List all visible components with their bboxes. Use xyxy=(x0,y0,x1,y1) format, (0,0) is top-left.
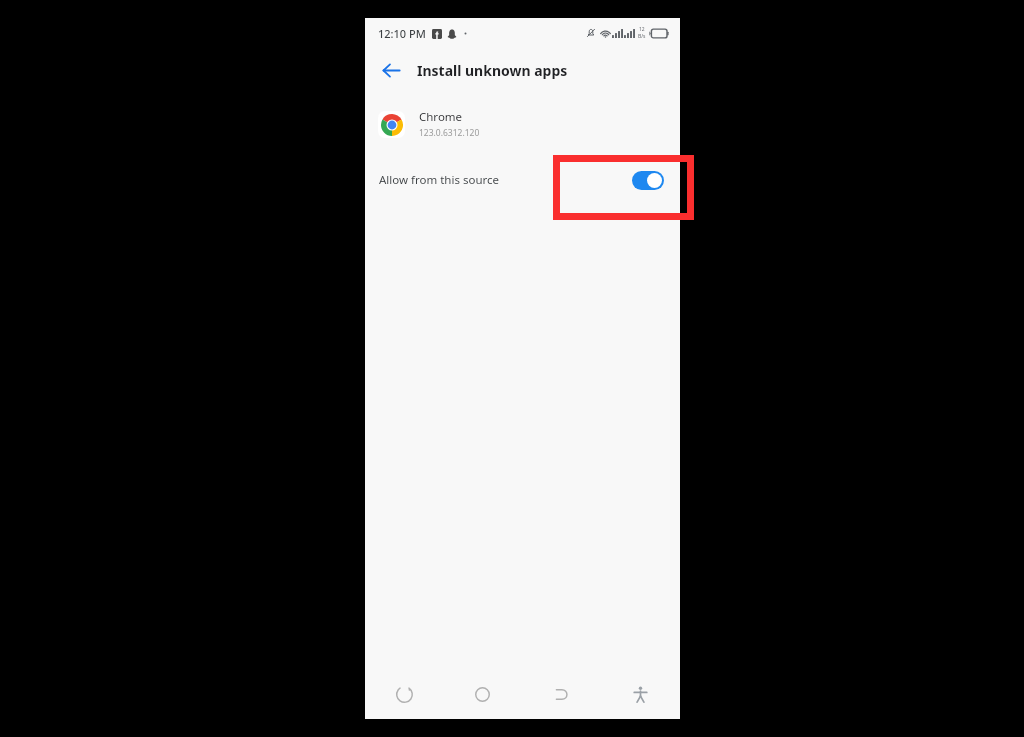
staticText: 12:10 PM xyxy=(378,26,426,41)
staticText: B/s xyxy=(638,33,646,40)
button[interactable]: Allow from this source xyxy=(365,158,680,202)
button[interactable]: Allow from this source toggle, on xyxy=(632,171,664,190)
staticText: 12 xyxy=(639,26,645,33)
button[interactable]: Chrome xyxy=(365,104,680,144)
staticText: 123.0.6312.120 xyxy=(419,127,480,139)
button[interactable]: Accessibility xyxy=(601,669,680,719)
staticText: Allow from this source xyxy=(379,172,500,188)
button[interactable]: Back xyxy=(376,55,406,85)
button[interactable]: Recents xyxy=(365,669,443,719)
staticText: Chrome xyxy=(419,109,463,125)
button[interactable]: Back xyxy=(522,669,601,719)
button[interactable]: Home xyxy=(443,669,522,719)
staticText: Install unknown apps xyxy=(417,61,568,80)
